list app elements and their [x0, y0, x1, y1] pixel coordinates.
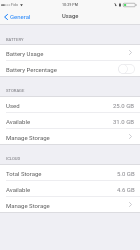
staticText: 4.6 GB: [117, 186, 135, 193]
staticText: Manage Storage: [6, 202, 50, 209]
button[interactable]: Manage Storage: [0, 197, 140, 212]
staticText: 10:29 PM: [62, 3, 78, 7]
staticText: Available: [6, 186, 31, 193]
staticText: 5.0 GB: [117, 170, 135, 177]
button[interactable]: Available: [0, 113, 140, 128]
button[interactable]: Battery Percentage: [0, 61, 140, 76]
staticText: ICLOUD: [6, 156, 21, 161]
staticText: Battery Usage: [6, 50, 44, 57]
button[interactable]: Battery Percentage toggle: [118, 64, 135, 74]
button[interactable]: Manage Storage: [0, 129, 140, 144]
staticText: Total Storage: [6, 170, 42, 177]
staticText: Manage Storage: [6, 134, 50, 141]
staticText: Available: [6, 118, 31, 125]
button[interactable]: Battery Usage: [0, 45, 140, 60]
staticText: Usage: [62, 13, 79, 20]
staticText: BATTERY: [6, 37, 24, 42]
staticText: General: [10, 13, 31, 20]
staticText: 31.0 GB: [113, 118, 135, 125]
staticText: STORAGE: [6, 88, 25, 93]
button[interactable]: Used: [0, 97, 140, 112]
staticText: 25.0 GB: [113, 102, 135, 109]
button[interactable]: General: [4, 9, 140, 24]
button[interactable]: Total Storage: [0, 165, 140, 180]
staticText: Used: [6, 102, 20, 109]
staticText: Battery Percentage: [6, 66, 57, 73]
staticText: Fido: [11, 3, 19, 7]
button[interactable]: Available: [0, 181, 140, 196]
